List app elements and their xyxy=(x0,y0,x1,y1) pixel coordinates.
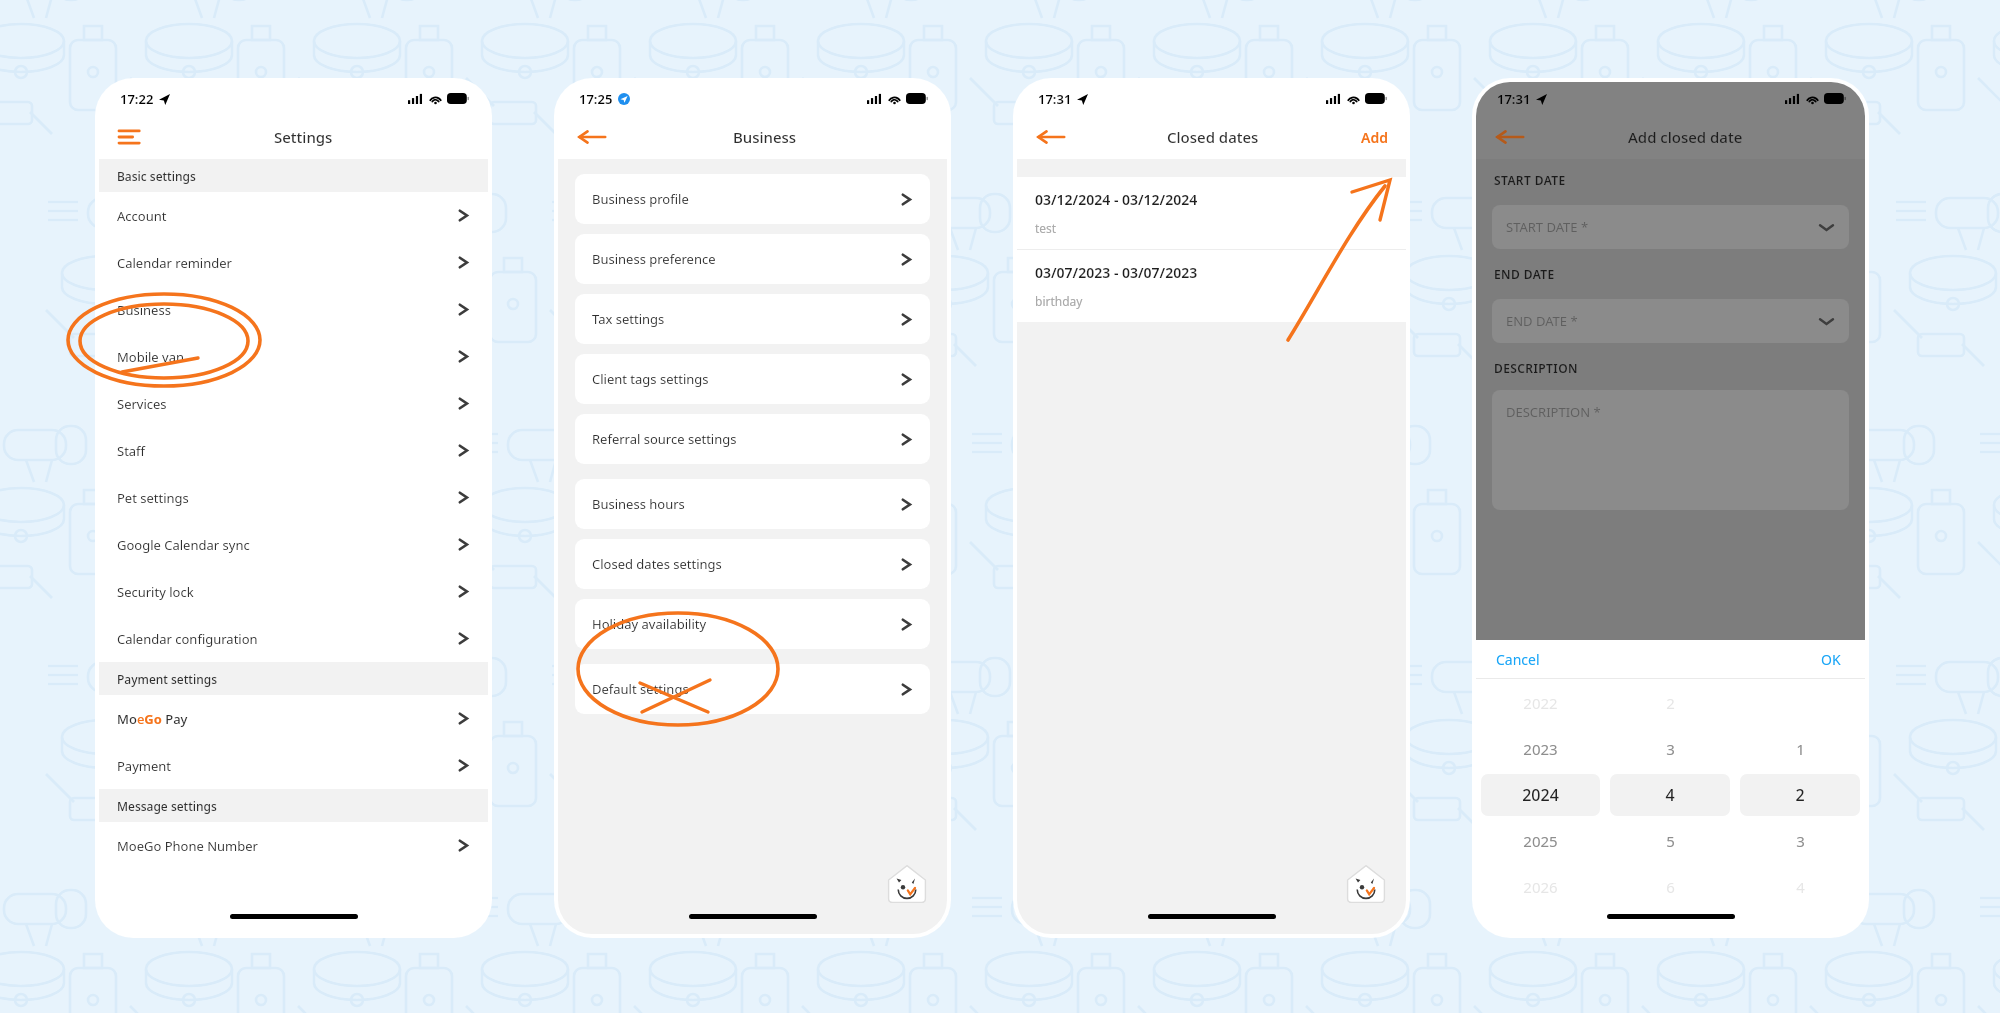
staticText: END DATE * xyxy=(1506,312,1578,330)
button[interactable]: 2024 xyxy=(1481,774,1600,816)
staticText: 17:31 xyxy=(1497,90,1531,108)
staticText: Closed dates settings xyxy=(592,555,722,573)
staticText: Pet settings xyxy=(117,489,189,507)
button[interactable]: Payment xyxy=(99,742,488,789)
staticText: Security lock xyxy=(117,583,194,601)
button[interactable]: Calendar configuration xyxy=(99,615,488,662)
button[interactable] xyxy=(1492,123,1528,151)
button[interactable]: Services xyxy=(99,380,488,427)
staticText: Business profile xyxy=(592,190,689,208)
staticText: 2022 xyxy=(1523,693,1558,713)
button[interactable]: Security lock xyxy=(99,568,488,615)
staticText: Business xyxy=(733,127,797,147)
button[interactable]: Mobile van xyxy=(99,333,488,380)
staticText: OK xyxy=(1821,650,1841,669)
staticText: DESCRIPTION * xyxy=(1506,403,1601,421)
button[interactable]: Default settings xyxy=(575,664,930,714)
button[interactable]: Help assistant xyxy=(887,864,927,904)
button[interactable]: Business preference xyxy=(575,234,930,284)
staticText: Tax settings xyxy=(592,310,665,328)
staticText: 6 xyxy=(1666,877,1675,897)
button[interactable]: Cancel xyxy=(1476,644,1552,675)
staticText: Calendar reminder xyxy=(117,254,232,272)
button[interactable] xyxy=(1033,123,1069,151)
staticText: 17:22 xyxy=(120,90,154,108)
staticText: 17:25 xyxy=(579,90,613,108)
button[interactable]: 03/07/2023 - 03/07/2023 xyxy=(1017,250,1406,322)
staticText: END DATE xyxy=(1494,266,1555,282)
staticText: Business xyxy=(117,301,171,319)
staticText: Cancel xyxy=(1496,650,1540,669)
button[interactable]: START DATE * xyxy=(1492,205,1849,249)
staticText: Payment settings xyxy=(117,671,217,687)
staticText: 2023 xyxy=(1523,739,1558,759)
button[interactable]: 4 xyxy=(1610,774,1730,816)
button[interactable]: 3 xyxy=(1740,820,1860,862)
staticText: 3 xyxy=(1666,739,1675,759)
staticText: Staff xyxy=(117,442,146,460)
staticText: DESCRIPTION xyxy=(1494,360,1578,376)
button[interactable]: MoeGo Phone Number xyxy=(99,822,488,869)
button[interactable]: MoeGo Pay xyxy=(99,695,488,742)
staticText: MoeGo Phone Number xyxy=(117,837,258,855)
staticText: Business hours xyxy=(592,495,685,513)
button[interactable]: Staff xyxy=(99,427,488,474)
staticText: Default settings xyxy=(592,680,689,698)
staticText: 2025 xyxy=(1523,831,1558,851)
button[interactable] xyxy=(574,123,610,151)
button[interactable]: Business profile xyxy=(575,174,930,224)
staticText: Services xyxy=(117,395,167,413)
staticText: Settings xyxy=(274,127,333,147)
staticText: Message settings xyxy=(117,798,217,814)
staticText: 2 xyxy=(1666,693,1675,713)
button[interactable]: Tax settings xyxy=(575,294,930,344)
button[interactable]: Help assistant xyxy=(1346,864,1386,904)
button[interactable]: 2026 xyxy=(1481,866,1600,908)
staticText: Calendar configuration xyxy=(117,630,258,648)
staticText: MoeGo Pay xyxy=(117,710,188,728)
button[interactable]: 03/12/2024 - 03/12/2024 xyxy=(1017,177,1406,249)
staticText: Closed dates xyxy=(1167,127,1259,147)
staticText: Account xyxy=(117,207,167,225)
button[interactable]: Calendar reminder xyxy=(99,239,488,286)
staticText: Google Calendar sync xyxy=(117,536,250,554)
button[interactable]: 5 xyxy=(1610,820,1730,862)
staticText: Client tags settings xyxy=(592,370,709,388)
staticText: 5 xyxy=(1666,831,1675,851)
staticText: Payment xyxy=(117,757,172,775)
other: Menu xyxy=(119,129,141,145)
button[interactable]: END DATE * xyxy=(1492,299,1849,343)
staticText: 4 xyxy=(1665,784,1675,806)
staticText: 2 xyxy=(1795,784,1805,806)
button[interactable]: 3 xyxy=(1610,728,1730,770)
button[interactable]: Client tags settings xyxy=(575,354,930,404)
button[interactable]: Google Calendar sync xyxy=(99,521,488,568)
staticText: START DATE xyxy=(1494,172,1566,188)
button[interactable]: Pet settings xyxy=(99,474,488,521)
button[interactable]: Closed dates settings xyxy=(575,539,930,589)
button[interactable]: 2023 xyxy=(1481,728,1600,770)
button[interactable]: 2022 xyxy=(1481,681,1600,724)
staticText: 4 xyxy=(1796,877,1805,897)
button[interactable]: Business hours xyxy=(575,479,930,529)
button[interactable]: OK xyxy=(1809,644,1865,675)
button[interactable]: Holiday availability xyxy=(575,599,930,649)
button[interactable]: Menu xyxy=(113,123,147,151)
button[interactable]: Add xyxy=(1357,124,1392,151)
staticText: Holiday availability xyxy=(592,615,707,633)
staticText: START DATE * xyxy=(1506,218,1589,236)
button[interactable]: 1 xyxy=(1740,728,1860,770)
staticText: 03/07/2023 - 03/07/2023 xyxy=(1035,263,1198,282)
button[interactable]: Business xyxy=(99,286,488,333)
staticText: Mobile van xyxy=(117,348,185,366)
staticText: 2024 xyxy=(1522,784,1559,806)
button[interactable]: 2 xyxy=(1740,774,1860,816)
button[interactable]: 2025 xyxy=(1481,820,1600,862)
button[interactable]: Referral source settings xyxy=(575,414,930,464)
button[interactable]: Account xyxy=(99,192,488,239)
